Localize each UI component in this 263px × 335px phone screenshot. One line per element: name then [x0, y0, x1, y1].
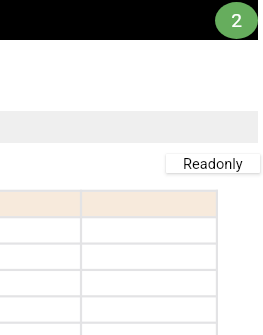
button[interactable]: Cell B5 — [82, 324, 218, 335]
button[interactable]: Readonly — [166, 154, 260, 173]
button[interactable]: Cell B4 — [82, 297, 218, 321]
button[interactable]: Cell B2 — [82, 245, 218, 269]
staticText: 2 — [231, 9, 242, 31]
button[interactable]: Cell B3 — [82, 271, 218, 295]
button[interactable]: Comments, 2 unread — [215, 2, 258, 39]
button[interactable]: Document toolbar — [0, 0, 258, 40]
staticText: Readonly — [183, 155, 243, 172]
button[interactable]: Cell B1 — [82, 218, 218, 242]
